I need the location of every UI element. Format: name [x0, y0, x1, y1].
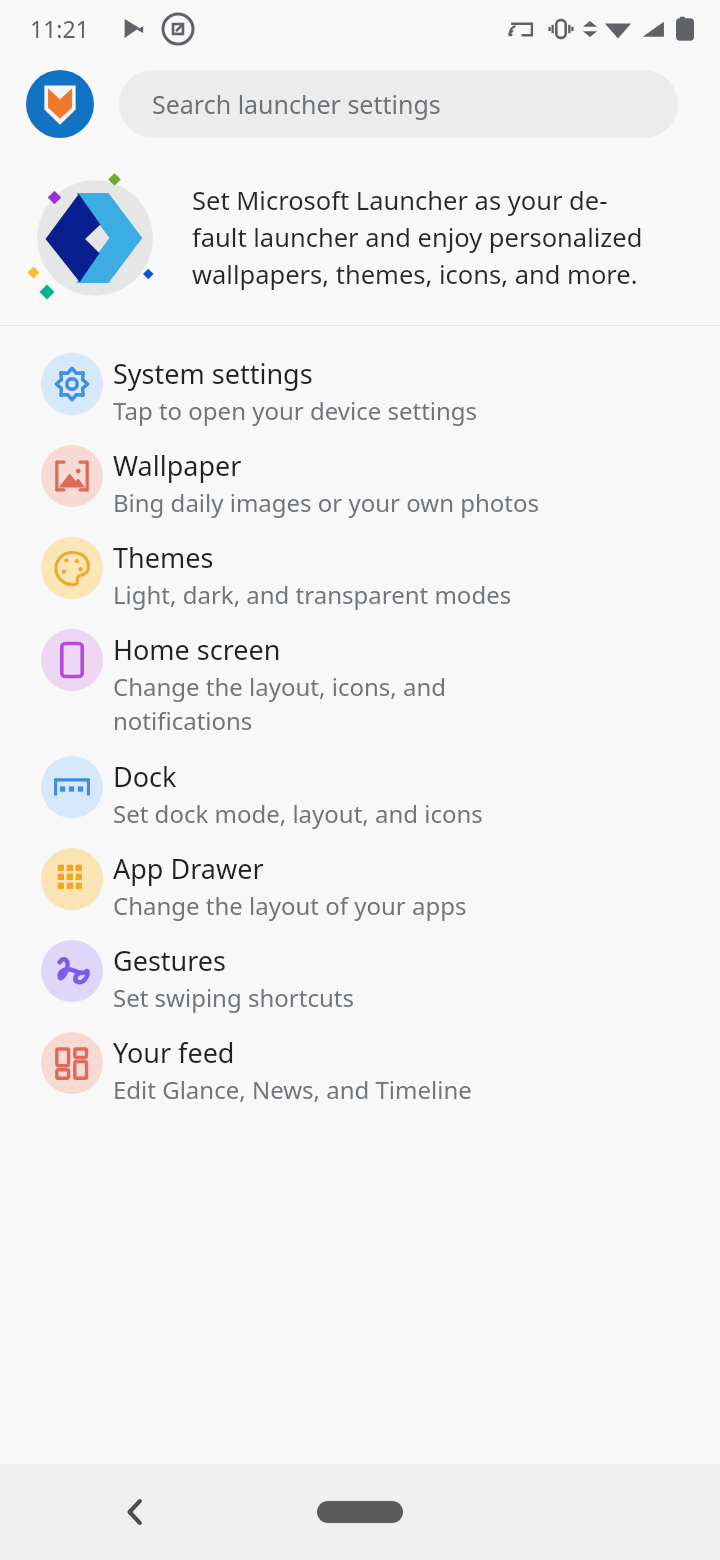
button[interactable]: System settings	[0, 344, 720, 436]
staticText: Set dock mode, layout, and icons	[113, 797, 483, 830]
staticText: Set swiping shortcuts	[113, 981, 354, 1014]
staticText: App Drawer	[113, 850, 264, 887]
button[interactable]: Wallpaper	[0, 436, 720, 528]
staticText: Set Microsoft Launcher as your de- fault…	[192, 183, 643, 292]
staticText: Change the layout, icons, and notificati…	[113, 670, 446, 738]
button[interactable]: Search launcher settings	[119, 70, 678, 138]
staticText: Home screen	[113, 631, 281, 668]
staticText: System settings	[113, 355, 313, 392]
staticText: Themes	[113, 539, 214, 576]
button[interactable]: Themes	[0, 528, 720, 620]
staticText: Wallpaper	[113, 447, 242, 484]
staticText: Change the layout of your apps	[113, 889, 467, 922]
staticText: Tap to open your device settings	[113, 394, 478, 427]
button[interactable]: Back	[105, 1482, 165, 1542]
staticText: Edit Glance, News, and Timeline	[113, 1073, 472, 1106]
staticText: Gestures	[113, 942, 227, 979]
staticText: Search launcher settings	[152, 87, 441, 121]
button[interactable]: Gestures	[0, 931, 720, 1023]
button[interactable]: App Drawer	[0, 839, 720, 931]
staticText: Light, dark, and transparent modes	[113, 578, 512, 611]
staticText: Your feed	[113, 1034, 235, 1071]
button[interactable]: Profile	[26, 70, 94, 138]
button[interactable]: Dock	[0, 747, 720, 839]
staticText: Dock	[113, 758, 177, 795]
staticText: Bing daily images or your own photos	[113, 486, 540, 519]
staticText: 11:21	[30, 13, 89, 44]
button[interactable]: Home	[295, 1482, 425, 1542]
button[interactable]: Your feed	[0, 1023, 720, 1115]
button[interactable]: Set Microsoft Launcher as your de- fault…	[0, 150, 720, 325]
button[interactable]: Home screen	[0, 620, 720, 747]
